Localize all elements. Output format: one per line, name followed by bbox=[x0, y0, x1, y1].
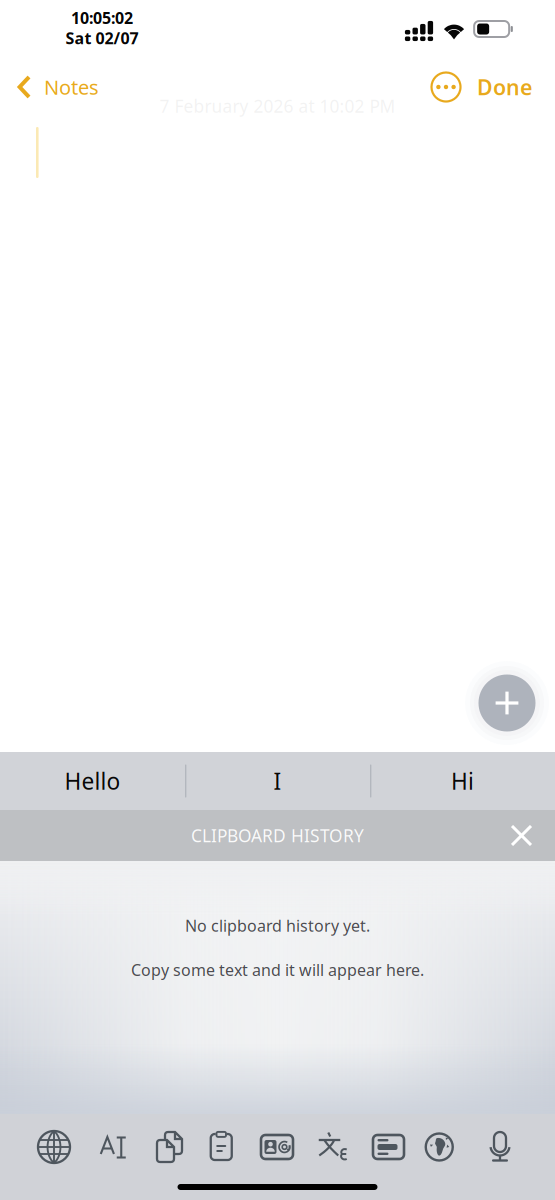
staticText: Notes bbox=[44, 74, 99, 100]
button[interactable]: Browser bbox=[421, 1123, 467, 1171]
button[interactable]: Text formatting bbox=[87, 1123, 133, 1171]
staticText: I bbox=[273, 766, 281, 796]
button[interactable]: Dictation bbox=[477, 1123, 523, 1171]
button[interactable]: More options bbox=[424, 60, 468, 114]
staticText: Sat 02/07 bbox=[65, 27, 138, 49]
button[interactable]: Hi bbox=[370, 752, 555, 810]
button[interactable]: Switch keyboard bbox=[31, 1123, 77, 1171]
staticText: Hello bbox=[64, 766, 120, 796]
button[interactable]: Notes bbox=[0, 60, 109, 114]
button[interactable]: Hello bbox=[0, 752, 185, 810]
button[interactable]: Clipboard bbox=[198, 1123, 244, 1171]
button[interactable]: Done bbox=[468, 60, 541, 114]
staticText: CLIPBOARD HISTORY bbox=[191, 824, 364, 847]
staticText: 10:05:02 bbox=[71, 7, 133, 28]
button[interactable]: Snippets bbox=[365, 1123, 411, 1171]
button[interactable]: Copy bbox=[142, 1123, 188, 1171]
button[interactable]: Translate bbox=[310, 1123, 356, 1171]
staticText: Done bbox=[477, 73, 532, 101]
button[interactable]: I bbox=[185, 752, 370, 810]
button[interactable]: Contacts bbox=[254, 1123, 300, 1171]
staticText: Hi bbox=[451, 766, 474, 796]
button[interactable]: Add attachment bbox=[465, 661, 549, 745]
staticText: 7 February 2026 at 10:02 PM bbox=[159, 94, 395, 117]
staticText: Copy some text and it will appear here. bbox=[131, 959, 424, 980]
staticText: No clipboard history yet. bbox=[185, 915, 370, 936]
button[interactable]: Close clipboard history bbox=[499, 810, 544, 861]
